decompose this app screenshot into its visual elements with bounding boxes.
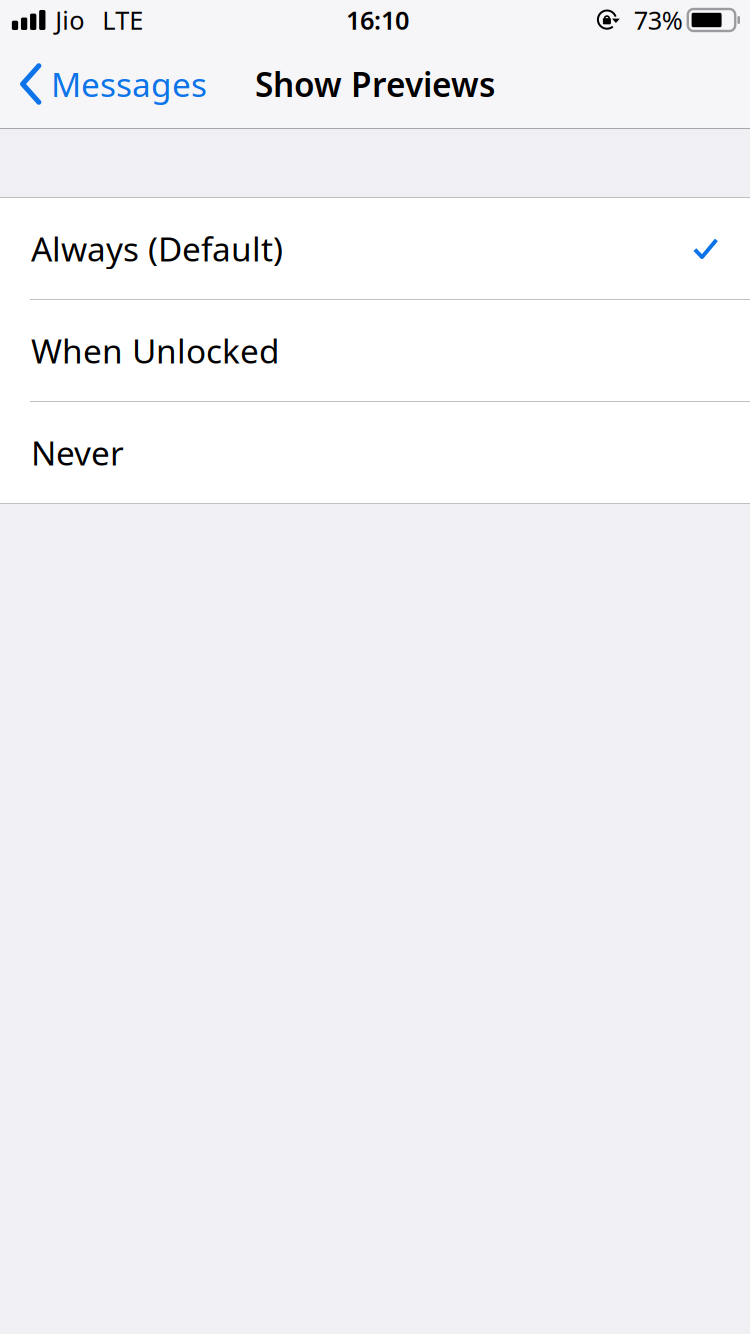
staticText: Always (Default) (31, 226, 283, 271)
staticText: Messages (51, 62, 207, 106)
button[interactable]: Never (0, 402, 750, 503)
button[interactable]: When Unlocked (0, 300, 750, 401)
staticText: Jio (55, 3, 84, 37)
button[interactable]: Always (Default) (0, 198, 750, 299)
staticText: When Unlocked (31, 328, 280, 373)
staticText: 73% (634, 3, 683, 37)
staticText: Show Previews (255, 62, 495, 106)
staticText: 16:10 (346, 3, 409, 37)
staticText: LTE (102, 3, 143, 37)
staticText: Never (31, 430, 124, 475)
button[interactable]: Messages (0, 40, 223, 128)
